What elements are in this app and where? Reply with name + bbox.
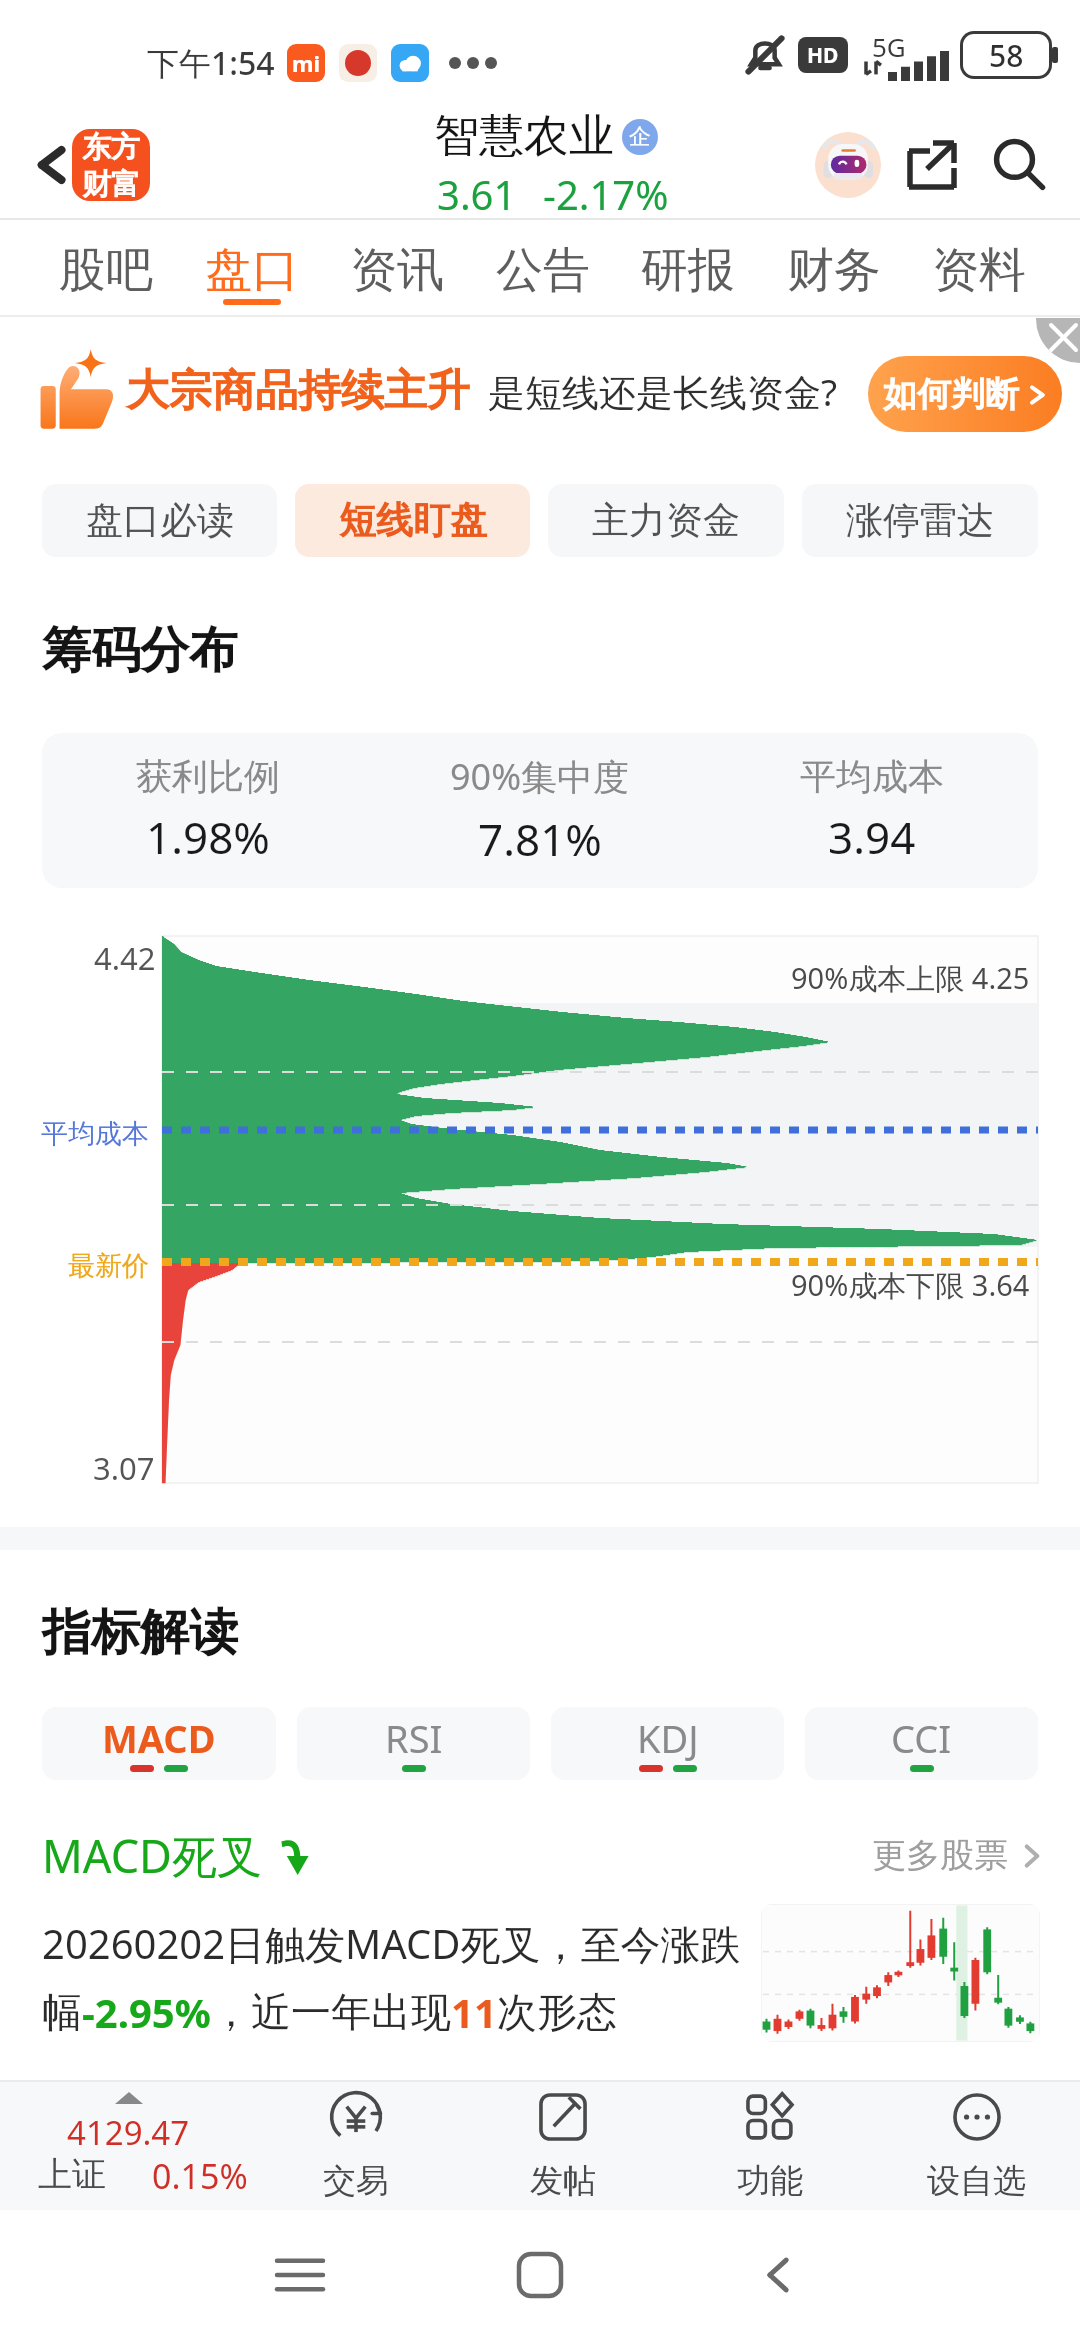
staticText: HD: [807, 41, 839, 70]
staticText: 设自选: [927, 2160, 1026, 2202]
staticText: 90%成本上限 4.25: [791, 958, 1030, 998]
button[interactable]: East Money: [72, 129, 150, 201]
staticText: 7.81%: [478, 809, 602, 869]
staticText: 4.42: [94, 937, 156, 979]
button[interactable]: 交易: [252, 2080, 459, 2210]
button[interactable]: 设自选: [873, 2080, 1080, 2210]
staticText: 筹码分布: [42, 620, 238, 682]
staticText: 财富: [82, 166, 140, 201]
staticText: 短线盯盘: [339, 497, 487, 544]
staticText: RSI: [385, 1712, 443, 1764]
button[interactable]: 资讯: [331, 220, 463, 317]
button[interactable]: 公告: [477, 220, 609, 317]
staticText: 11: [451, 1985, 497, 2039]
button[interactable]: 短线盯盘: [295, 484, 530, 557]
button[interactable]: Search: [974, 120, 1064, 210]
button[interactable]: Back: [718, 2215, 838, 2335]
staticText: 研报: [641, 241, 735, 300]
staticText: 财务: [787, 241, 881, 300]
staticText: 90%成本下限 3.64: [791, 1265, 1030, 1305]
staticText: 是短线还是长线资金?: [488, 366, 838, 417]
button[interactable]: 主力资金: [548, 484, 784, 557]
button[interactable]: 盘口: [186, 220, 318, 317]
staticText: 公告: [496, 241, 590, 300]
staticText: 交易: [323, 2160, 389, 2202]
staticText: 上证: [38, 2153, 106, 2196]
staticText: 3.61: [437, 167, 517, 218]
button[interactable]: CCI: [805, 1707, 1038, 1780]
button[interactable]: 股吧: [40, 220, 172, 317]
staticText: 主力资金: [592, 497, 740, 544]
staticText: 下午1:54: [147, 41, 275, 85]
button[interactable]: Close banner: [1036, 318, 1080, 363]
staticText: 1.98%: [146, 807, 270, 867]
button[interactable]: 涨停雷达: [802, 484, 1038, 557]
staticText: 4129.47: [67, 2110, 190, 2155]
staticText: 资讯: [350, 241, 444, 300]
staticText: 平均成本: [800, 754, 944, 799]
staticText: 获利比例: [136, 754, 280, 799]
button[interactable]: Home: [480, 2215, 600, 2335]
staticText: 资料: [932, 241, 1026, 300]
staticText: 大宗商品持续主升: [126, 364, 470, 418]
staticText: 次形态: [497, 1987, 617, 2037]
staticText: 盘口必读: [86, 497, 234, 544]
button[interactable]: 盘口必读: [42, 484, 277, 557]
staticText: -2.17%: [543, 167, 669, 218]
staticText: MACD死叉: [42, 1825, 262, 1886]
button[interactable]: Share: [890, 123, 974, 207]
staticText: 幅: [42, 1987, 82, 2037]
button[interactable]: MACD: [42, 1707, 276, 1780]
button[interactable]: 如何判断: [868, 356, 1062, 432]
staticText: 90%集中度: [450, 752, 630, 801]
button[interactable]: 财务: [768, 220, 900, 317]
button[interactable]: 发帖: [459, 2080, 666, 2210]
staticText: -2.95%: [82, 1985, 211, 2039]
staticText: 5G: [872, 29, 906, 64]
staticText: 如何判断: [883, 373, 1019, 416]
staticText: 最新价: [68, 1249, 149, 1283]
staticText: 功能: [737, 2160, 803, 2202]
staticText: 更多股票: [872, 1834, 1008, 1877]
staticText: 20260202日触发MACD死叉，至今涨跌: [42, 1916, 741, 1971]
staticText: 3.07: [93, 1447, 155, 1489]
staticText: 股吧: [59, 241, 153, 300]
staticText: 平均成本: [41, 1117, 149, 1151]
button[interactable]: Recent apps: [240, 2215, 360, 2335]
button[interactable]: KDJ: [551, 1707, 784, 1780]
button[interactable]: 更多股票: [872, 1834, 1044, 1877]
staticText: 0.15%: [152, 2153, 248, 2199]
button[interactable]: 研报: [622, 220, 754, 317]
staticText: 发帖: [530, 2160, 596, 2202]
staticText: 指标解读: [42, 1602, 238, 1664]
staticText: 企: [629, 123, 651, 151]
button[interactable]: RSI: [297, 1707, 530, 1780]
staticText: MACD: [102, 1712, 216, 1764]
button[interactable]: 功能: [666, 2080, 873, 2210]
staticText: 盘口: [205, 241, 299, 300]
staticText: CCI: [891, 1712, 952, 1764]
staticText: 3.94: [828, 807, 916, 867]
button[interactable]: AI Assistant: [806, 123, 890, 207]
staticText: 智慧农业: [434, 108, 614, 165]
staticText: ，近一年出现: [211, 1987, 451, 2037]
button[interactable]: 4129.47: [0, 2080, 272, 2210]
staticText: 东方: [82, 129, 140, 166]
staticText: mi: [292, 48, 321, 78]
staticText: 58: [989, 35, 1024, 76]
staticText: KDJ: [637, 1712, 699, 1764]
staticText: 涨停雷达: [846, 497, 994, 544]
button[interactable]: Back: [14, 127, 90, 203]
button[interactable]: 资料: [913, 220, 1045, 317]
